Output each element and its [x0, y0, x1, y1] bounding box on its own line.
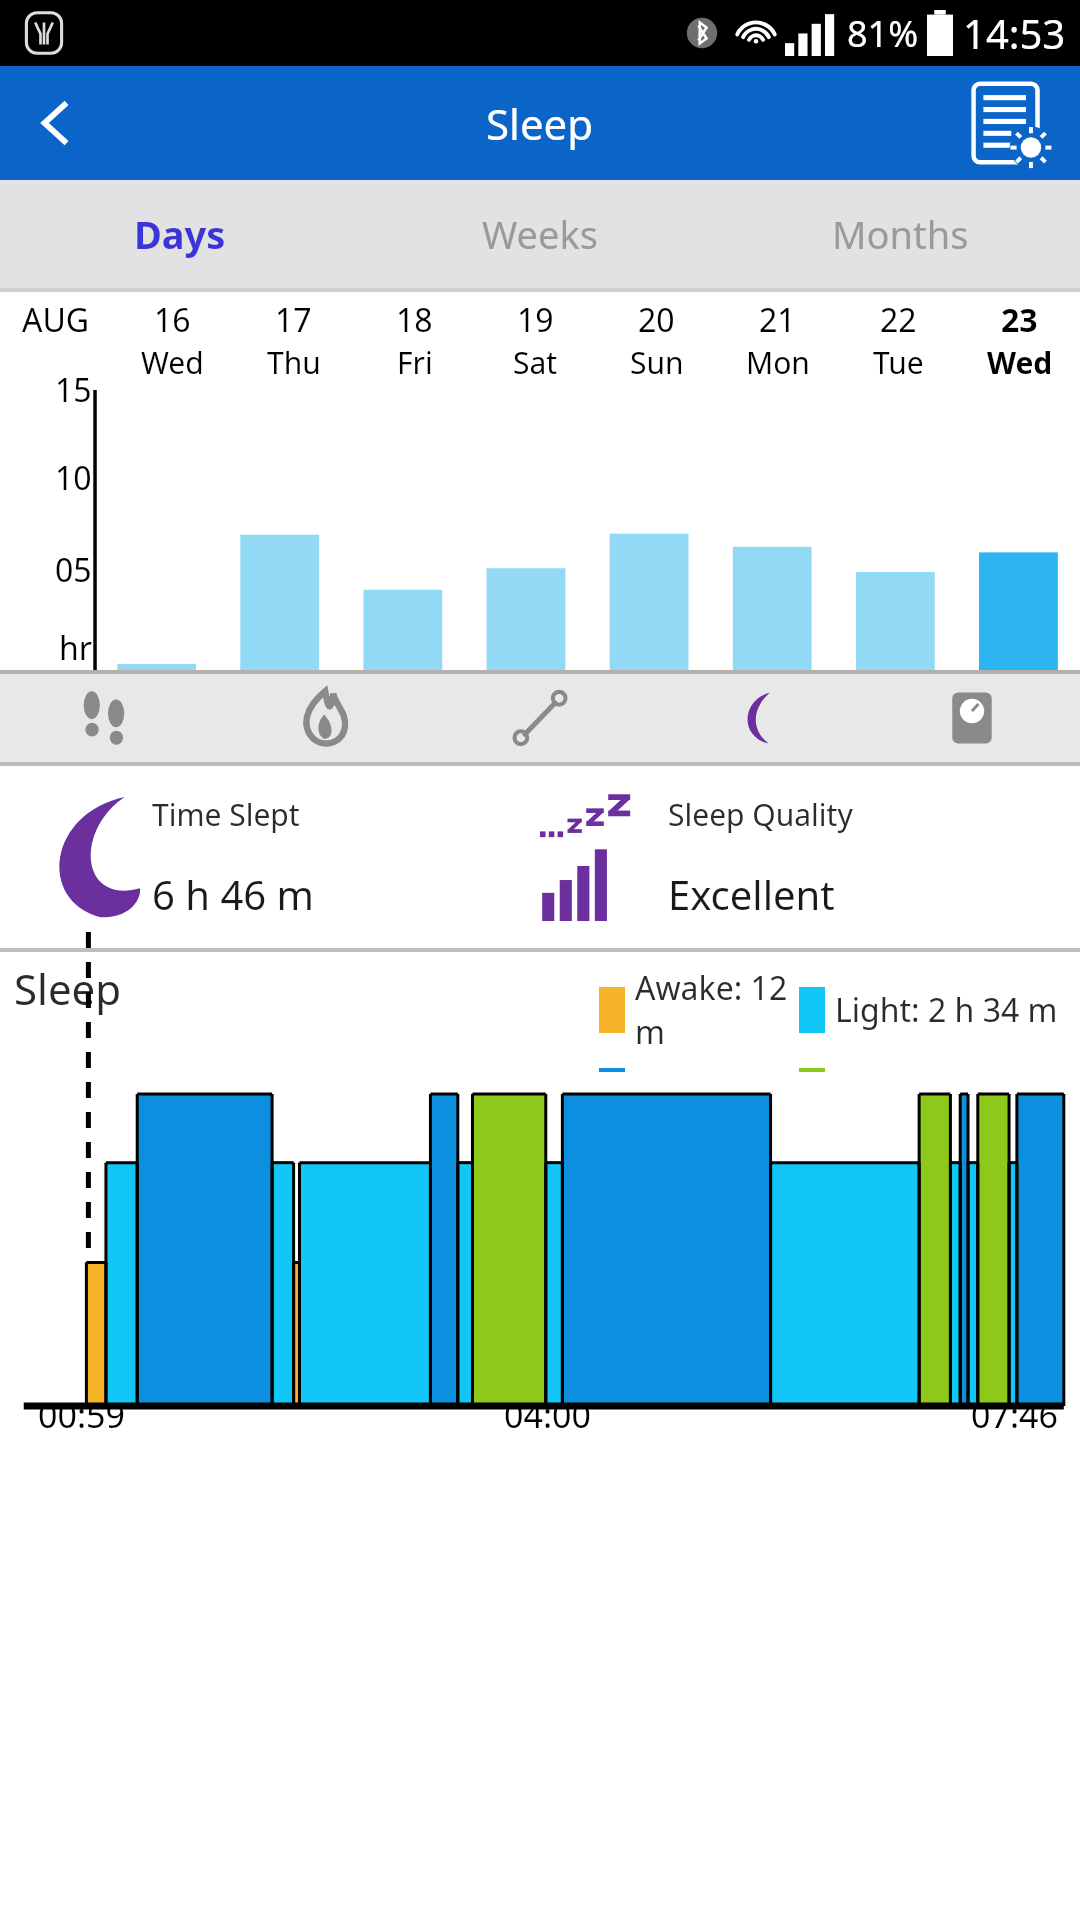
staticText: Wed: [141, 342, 204, 378]
staticText: Sleep: [486, 95, 594, 152]
staticText: 07:46: [971, 1392, 1058, 1438]
staticText: 22: [880, 298, 917, 342]
button[interactable]: Calories: [216, 674, 432, 762]
staticText: hr: [59, 626, 92, 670]
staticText: 15: [55, 368, 92, 412]
staticText: Tue: [873, 342, 924, 378]
button[interactable]: Steps: [0, 674, 216, 762]
button[interactable]: Days: [0, 180, 360, 288]
staticText: Excellent: [668, 867, 835, 921]
button[interactable]: Sleep report: [962, 77, 1054, 169]
staticText: Sun: [630, 342, 684, 378]
staticText: Light: 2 h 34 m: [835, 988, 1058, 1032]
button[interactable]: Back: [0, 67, 112, 179]
staticText: Sleep Quality: [668, 794, 853, 835]
staticText: AUG: [22, 298, 90, 342]
staticText: 10: [55, 456, 92, 500]
staticText: 23: [1001, 298, 1038, 342]
staticText: Mon: [746, 342, 810, 378]
staticText: 04:00: [504, 1392, 591, 1438]
staticText: Wed: [987, 342, 1053, 378]
staticText: 6 h 46 m: [152, 867, 314, 921]
staticText: Weeks: [482, 208, 598, 260]
staticText: Thu: [267, 342, 321, 378]
staticText: 14:53: [963, 6, 1066, 60]
button[interactable]: Sleep: [648, 674, 864, 762]
staticText: Fri: [397, 342, 433, 378]
staticText: 05: [55, 548, 92, 592]
button[interactable]: Weight: [864, 674, 1080, 762]
staticText: Sat: [513, 342, 558, 378]
staticText: 16: [154, 298, 191, 342]
staticText: 18: [396, 298, 433, 342]
staticText: Time Slept: [152, 794, 300, 835]
staticText: Awake: 12 m: [635, 966, 799, 1054]
staticText: Sleep: [14, 960, 122, 1017]
button[interactable]: Months: [720, 180, 1080, 288]
staticText: Days: [134, 208, 226, 260]
staticText: 19: [517, 298, 554, 342]
staticText: 21: [759, 298, 796, 342]
button[interactable]: Weeks: [360, 180, 720, 288]
button[interactable]: Activity: [432, 674, 648, 762]
staticText: 81%: [847, 9, 919, 58]
staticText: 00:59: [38, 1392, 125, 1438]
staticText: Months: [832, 208, 969, 260]
staticText: 20: [638, 298, 675, 342]
staticText: 17: [275, 298, 312, 342]
